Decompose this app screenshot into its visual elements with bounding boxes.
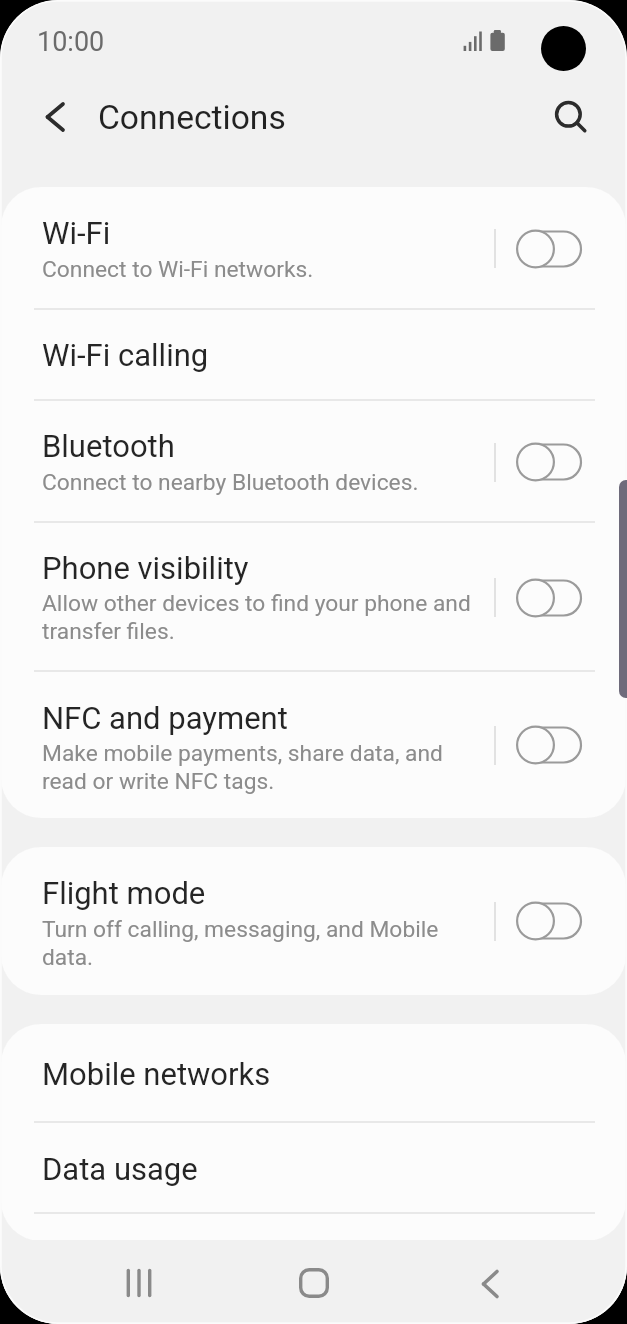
staticText: Wi-Fi — [42, 215, 486, 251]
button[interactable]: Data usage — [1, 1123, 626, 1214]
button[interactable]: Bluetooth — [1, 401, 626, 523]
button[interactable]: Back — [28, 90, 82, 144]
button[interactable]: Flight mode — [1, 847, 626, 995]
button[interactable]: Toggle Bluetooth — [513, 439, 593, 485]
staticText: Make mobile payments, share data, and re… — [42, 740, 496, 795]
button[interactable]: Toggle NFC and payment — [513, 722, 593, 768]
staticText: Connect to Wi-Fi networks. — [42, 256, 496, 283]
button[interactable]: Wi-Fi calling — [1, 310, 626, 401]
staticText: Phone visibility — [42, 550, 486, 586]
staticText: NFC and payment — [42, 700, 486, 736]
button[interactable]: NFC and payment — [1, 672, 626, 818]
staticText: Wi-Fi calling — [42, 337, 486, 373]
staticText: Connect to nearby Bluetooth devices. — [42, 469, 496, 496]
button[interactable]: Home — [272, 1241, 356, 1324]
staticText: Turn off calling, messaging, and Mobile … — [42, 916, 496, 971]
staticText: Allow other devices to find your phone a… — [42, 590, 496, 645]
button[interactable]: Wi-Fi — [1, 187, 626, 310]
staticText: Flight mode — [42, 875, 486, 911]
staticText: Bluetooth — [42, 428, 486, 464]
button[interactable]: Toggle Flight mode — [513, 898, 593, 944]
staticText: Mobile networks — [42, 1056, 486, 1092]
staticText: Data usage — [42, 1151, 486, 1187]
button[interactable]: Mobile networks — [1, 1024, 626, 1123]
staticText: 10:00 — [37, 26, 105, 58]
button[interactable]: Search — [546, 92, 602, 148]
button[interactable]: Phone visibility — [1, 523, 626, 672]
button[interactable]: Toggle Phone visibility — [513, 575, 593, 621]
button[interactable]: Toggle Wi-Fi — [513, 226, 593, 272]
button[interactable]: Back — [449, 1242, 533, 1324]
staticText: Connections — [98, 98, 286, 137]
button[interactable]: Recents — [98, 1241, 182, 1324]
